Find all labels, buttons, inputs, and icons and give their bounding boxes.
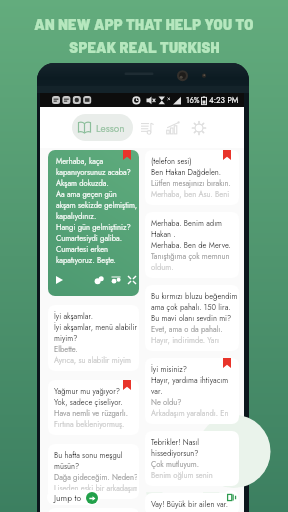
staticText: Merhaba, ben Asu. Beni xyxy=(151,189,230,200)
button[interactable]: Lesson xyxy=(72,114,133,141)
button[interactable]: (telefon sesi) xyxy=(145,150,239,205)
button[interactable]: Audio xyxy=(136,117,158,139)
staticText: Yağmur mu yağıyor? xyxy=(54,386,120,397)
staticText: Hayır, yardıma ihtiyacım xyxy=(151,375,229,386)
staticText: ama çok pahalı. 150 lira. xyxy=(151,302,231,313)
staticText: İyi misiniz? xyxy=(151,364,188,375)
staticText: Vay! Büyük bir ailen var. xyxy=(151,499,229,510)
staticText: Tebrikler! Nasıl xyxy=(151,437,200,448)
staticText: kapatıyoruz. Beşte. xyxy=(56,255,116,266)
staticText: Hayır, indirimde. Yarı xyxy=(151,335,220,346)
staticText: Lesson xyxy=(96,121,125,135)
staticText: Dağa gideceğim. Neden? xyxy=(54,472,137,483)
staticText: AN NEW APP THAT HELP YOU TO xyxy=(34,15,254,33)
button[interactable]: Bu hafta sonu meşgul xyxy=(48,444,139,499)
button[interactable]: Statistics xyxy=(162,117,184,139)
staticText: miyim? xyxy=(54,333,78,344)
staticText: Hava nemli ve rüzgarlı. xyxy=(54,408,129,419)
staticText: oldum. xyxy=(151,262,174,273)
staticText: (telefon sesi) xyxy=(151,156,192,167)
staticText: Merhaba. Benim adım xyxy=(151,218,223,229)
staticText: hissediyorsun? xyxy=(151,448,199,459)
staticText: Elbette. xyxy=(54,344,78,355)
staticText: Hangi gün gelmiştiniz? xyxy=(56,222,131,233)
staticText: Yok, sadece çiseliyor. xyxy=(54,397,123,408)
staticText: Merhaba. Ben de Merve. xyxy=(151,240,231,251)
staticText: Hakan . xyxy=(151,229,176,240)
button[interactable]: İyi akşamlar. xyxy=(48,305,139,371)
button[interactable]: Merhaba, kaça xyxy=(48,150,139,296)
button[interactable]: Yağmur mu yağıyor? xyxy=(48,380,139,435)
staticText: var. xyxy=(151,386,163,397)
staticText: kapalıydınız. xyxy=(56,211,97,222)
button[interactable]: Vay! Büyük bir ailen var. xyxy=(145,493,239,512)
button[interactable]: Tebrikler! Nasıl xyxy=(145,431,239,486)
staticText: Ayrıca, su alabilir miyim xyxy=(54,355,131,366)
staticText: Çok mutluyum. xyxy=(151,459,199,470)
staticText: Ben Hakan Dağdelen. xyxy=(151,167,222,178)
staticText: müsün? xyxy=(54,461,80,472)
staticText: Evet, ama o da pahalı. xyxy=(151,324,223,335)
staticText: Jump to xyxy=(54,492,82,504)
staticText: Aa ama geçen gün xyxy=(56,189,117,200)
staticText: Merhaba, kaça xyxy=(56,156,104,167)
staticText: Lütfen mesajınızı bırakın. xyxy=(151,178,231,189)
staticText: Akşam dokuzda. xyxy=(56,178,109,189)
staticText: Bu mavi olanı sevdin mi? xyxy=(151,313,232,324)
staticText: SPEAK REAL TURKISH xyxy=(69,38,220,56)
button[interactable]: Open reader xyxy=(224,490,238,504)
staticText: 16% xyxy=(186,95,200,106)
button[interactable]: Settings xyxy=(188,117,210,139)
button[interactable]: Merhaba. Benim adım xyxy=(145,212,239,278)
staticText: Liseden eski bir arkadaşım xyxy=(54,483,137,494)
staticText: Bu hafta sonu meşgul xyxy=(54,450,123,461)
staticText: Arkadaşım yaralandı. En xyxy=(151,408,229,419)
staticText: 4:23 PM xyxy=(209,94,239,106)
staticText: Ne oldu? xyxy=(151,397,182,408)
staticText: Tanıştığıma çok memnun xyxy=(151,251,230,262)
staticText: Fırtına bekleniyormuş. xyxy=(54,419,125,430)
staticText: Cumartesiydi galiba. xyxy=(56,233,123,244)
staticText: akşam sekizde gelmiştim, xyxy=(56,200,137,211)
staticText: İyi akşamlar, menü alabilir xyxy=(54,322,137,333)
staticText: kapanıyorsunuz acaba? xyxy=(56,167,131,178)
staticText: Benim oğlum senin xyxy=(151,470,213,481)
staticText: Bu kırmızı bluzu beğendim xyxy=(151,291,237,302)
button[interactable]: Jump to xyxy=(47,490,100,505)
staticText: Cumartesi erken xyxy=(56,244,109,255)
button[interactable]: İyi misiniz? xyxy=(145,358,239,424)
staticText: İyi akşamlar. xyxy=(54,311,93,322)
button[interactable]: Bu kırmızı bluzu beğendim xyxy=(145,285,239,351)
